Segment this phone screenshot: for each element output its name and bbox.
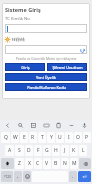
button[interactable]: GIF [42,121,51,130]
staticText: G [45,147,49,154]
button[interactable] [5,24,87,33]
staticText: F [37,147,40,154]
button[interactable]: Ara [16,121,25,130]
button[interactable]: Sil [79,158,91,169]
staticText: . [72,173,74,180]
staticText: ?123 [4,175,11,179]
staticText: Q [4,134,8,141]
button[interactable]: Parola/Kullanıcı Kodu [5,83,87,91]
button[interactable]: V [43,158,51,169]
button[interactable]: ?123 [1,171,13,182]
button[interactable]: Şifremi Unuttum [47,63,87,71]
button[interactable]: U [56,132,64,143]
button[interactable]: T [38,132,46,143]
staticText: M [72,160,77,167]
staticText: X [28,160,31,167]
staticText: R [31,134,35,141]
staticText: C [36,160,40,167]
staticText: L [82,147,85,154]
staticText: A [8,147,12,154]
staticText: Yeni Üyelik [36,75,56,80]
staticText: D [27,147,31,154]
staticText: Şifremi Unuttum [52,65,83,70]
button[interactable]: A [5,145,14,156]
button[interactable]: D [25,145,33,156]
staticText: Z [18,160,21,167]
button[interactable]: , [14,171,22,182]
staticText: U [58,134,62,141]
staticText: E [23,134,26,141]
button[interactable]: Pano [54,121,63,130]
button[interactable]: Y [47,132,55,143]
button[interactable]: S [15,145,24,156]
button[interactable]: J [61,145,69,156]
button[interactable]: I [65,132,73,143]
staticText: Parola/Kullanıcı Kodu [27,85,66,90]
button[interactable]: N [61,158,69,169]
staticText: TC Kimlik No [5,16,30,22]
staticText: Sisteme Giriş [5,6,41,13]
button[interactable]: B [52,158,60,169]
button[interactable]: H [52,145,60,156]
staticText: K [72,147,76,154]
staticText: N [63,160,67,167]
button[interactable]: Z [15,158,24,169]
staticText: J [64,147,66,154]
staticText: O [76,134,80,141]
staticText: , [17,173,19,180]
button[interactable]: Menü [3,121,12,130]
staticText: Giriş [21,65,30,70]
staticText: T [41,134,44,141]
button[interactable]: Yenile [79,47,85,53]
button[interactable]: . [69,171,77,182]
button[interactable]: Yenile [5,45,87,54]
button[interactable]: G [43,145,51,156]
button[interactable]: X [25,158,33,169]
staticText: I [68,134,70,141]
button[interactable]: Q [1,132,10,143]
button[interactable]: W [11,132,19,143]
button[interactable]: Enter [78,171,91,182]
button[interactable]: C [34,158,42,169]
button[interactable]: L [79,145,87,156]
staticText: V [45,160,49,167]
button[interactable]: Shift [1,158,14,169]
staticText: B [54,160,58,167]
button[interactable]: Emoji [23,171,31,182]
staticText: Parola ve Güvenlik Metni için tıklayınız [5,56,87,61]
button[interactable]: Sesle yazma [80,121,89,130]
staticText: Y [50,134,53,141]
button[interactable]: K [70,145,78,156]
button[interactable]: Yeni Üyelik [5,73,87,81]
button[interactable]: Giriş [5,63,45,71]
button[interactable]: R [29,132,37,143]
staticText: H [54,147,58,154]
button[interactable]: O [74,132,82,143]
staticText: P [85,134,89,141]
button[interactable]: M [70,158,78,169]
button[interactable]: F [34,145,42,156]
staticText: W [13,134,18,141]
button[interactable]: P [83,132,91,143]
button[interactable]: E [20,132,28,143]
button[interactable]: Ayarlar [67,121,76,130]
button[interactable]: Çeviri [29,121,38,130]
staticText: S [18,147,21,154]
